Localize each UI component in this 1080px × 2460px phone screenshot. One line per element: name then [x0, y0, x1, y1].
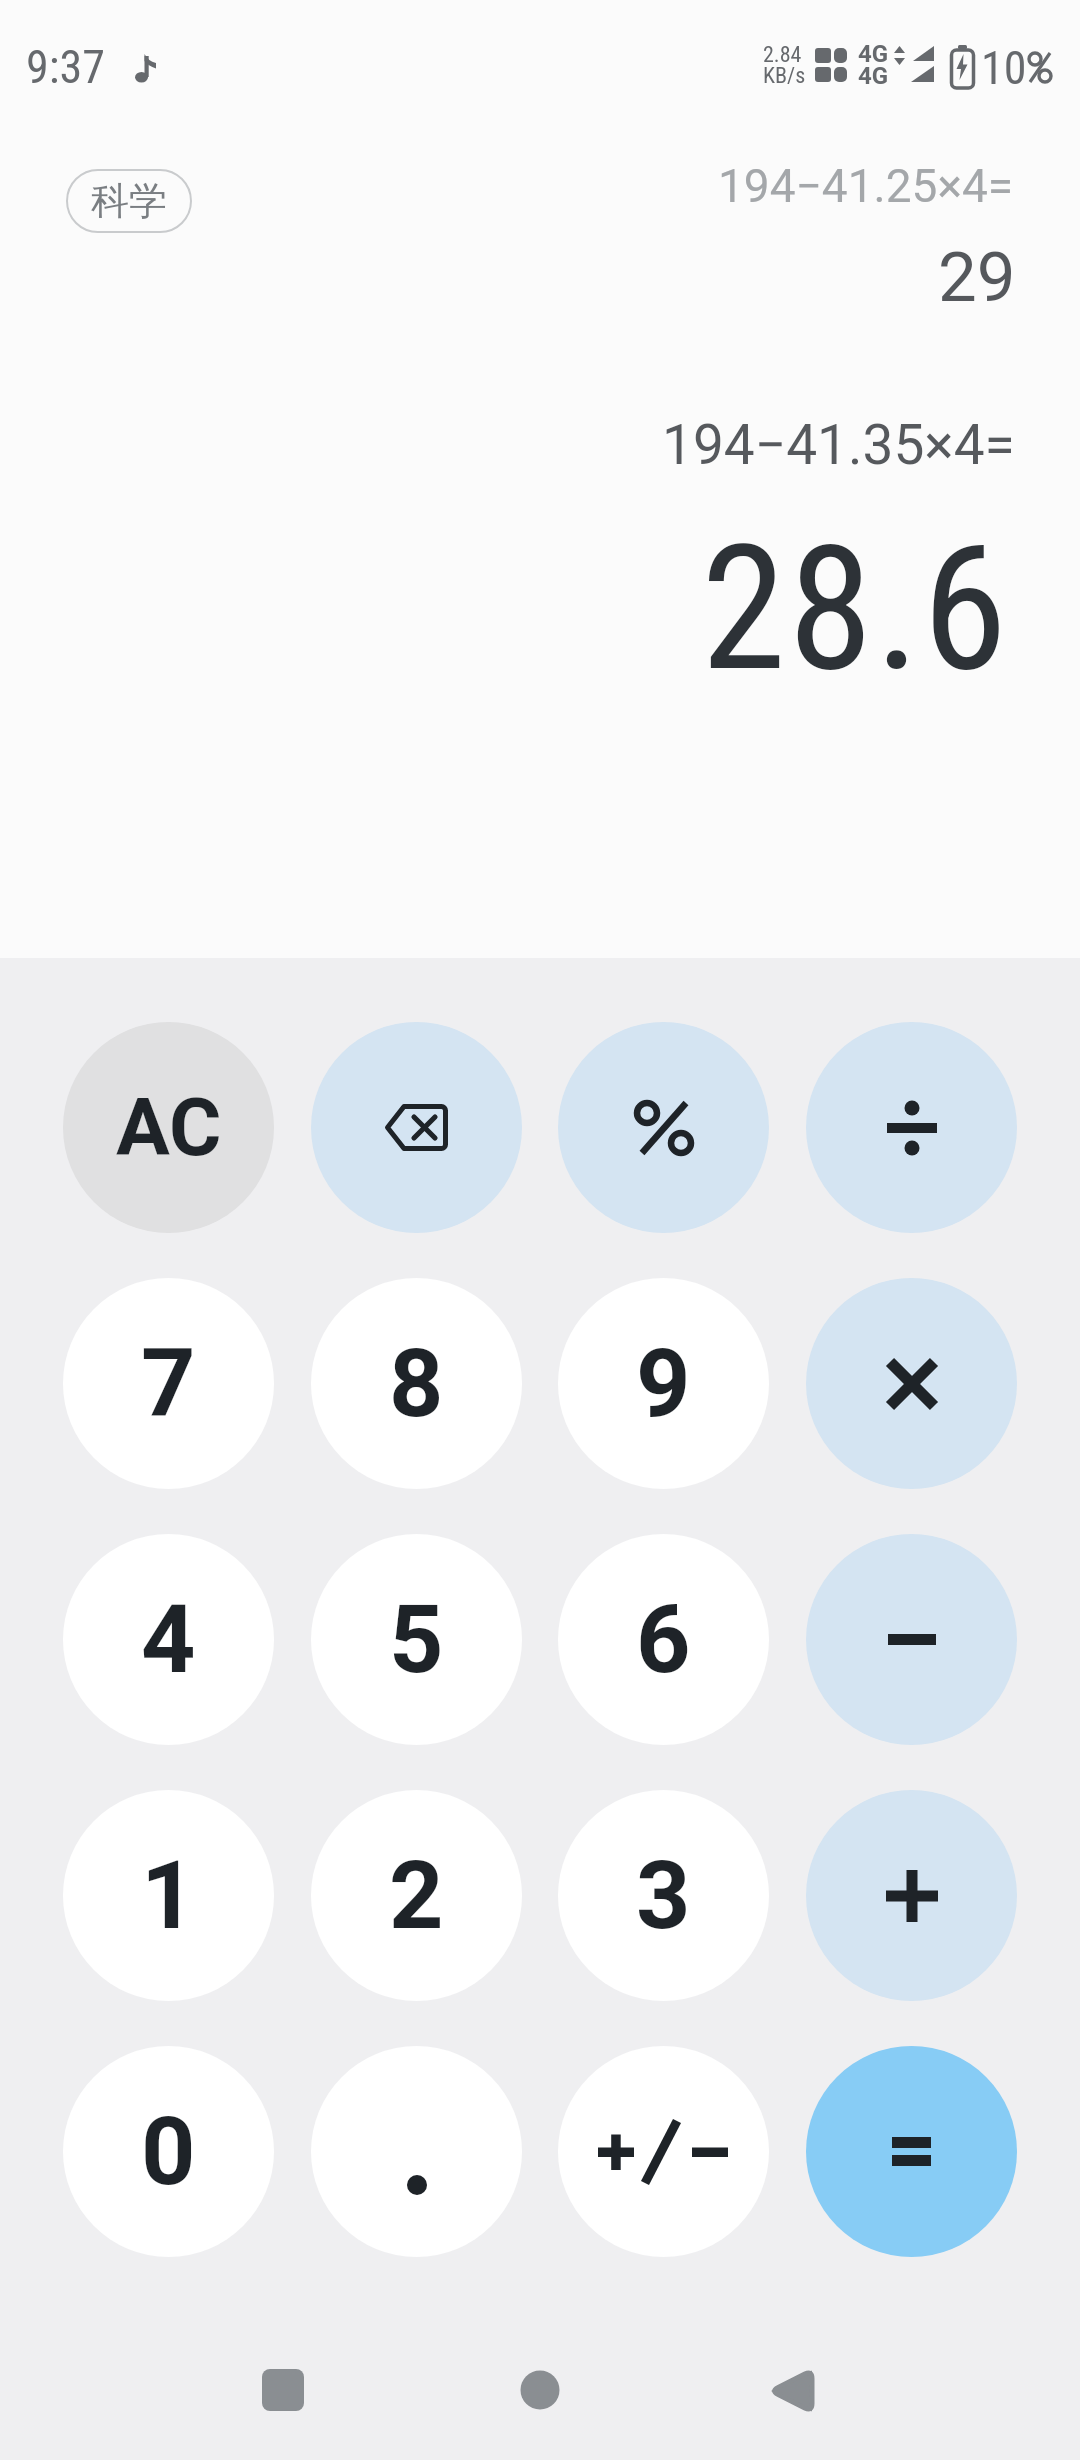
staticText: 4G — [858, 40, 889, 68]
staticText: 6 — [636, 1584, 691, 1695]
staticText: 29 — [938, 237, 1016, 318]
button[interactable] — [311, 2046, 522, 2257]
button[interactable] — [245, 2350, 325, 2430]
button[interactable]: 科学 — [66, 169, 192, 233]
staticText: 194−41.25×4= — [718, 159, 1014, 213]
button[interactable] — [806, 1534, 1017, 1745]
staticText: 1 — [141, 1840, 196, 1951]
staticText: 2 — [389, 1840, 444, 1951]
button[interactable]: 2 — [311, 1790, 522, 2001]
staticText: 科学 — [91, 177, 167, 225]
button[interactable] — [500, 2350, 580, 2430]
button[interactable] — [558, 2046, 769, 2257]
staticText: 8 — [389, 1328, 444, 1439]
button[interactable] — [806, 1278, 1017, 1489]
staticText: 194−41.35×4= — [662, 413, 1015, 477]
staticText: AC — [116, 1081, 222, 1175]
button[interactable] — [311, 1022, 522, 1233]
staticText: 7 — [141, 1328, 196, 1439]
staticText: 5 — [389, 1584, 444, 1695]
button[interactable]: 5 — [311, 1534, 522, 1745]
staticText: 3 — [636, 1840, 691, 1951]
button[interactable] — [806, 1790, 1017, 2001]
staticText: 4G — [858, 62, 889, 90]
button[interactable] — [750, 2350, 830, 2430]
button[interactable]: 9 — [558, 1278, 769, 1489]
staticText: 2.84 — [763, 42, 802, 68]
button[interactable]: 4 — [63, 1534, 274, 1745]
staticText: 9 — [636, 1328, 691, 1439]
button[interactable] — [806, 2046, 1017, 2257]
button[interactable]: 7 — [63, 1278, 274, 1489]
button[interactable]: 6 — [558, 1534, 769, 1745]
button[interactable]: 8 — [311, 1278, 522, 1489]
staticText: 4 — [141, 1584, 196, 1695]
button[interactable]: 0 — [63, 2046, 274, 2257]
button[interactable]: 3 — [558, 1790, 769, 2001]
button[interactable] — [558, 1022, 769, 1233]
staticText: 0 — [141, 2096, 196, 2207]
staticText: 10 — [981, 41, 1027, 95]
staticText: 9:37 — [26, 40, 105, 94]
staticText: KB/s — [763, 63, 806, 89]
button[interactable]: 1 — [63, 1790, 274, 2001]
button[interactable] — [806, 1022, 1017, 1233]
button[interactable]: AC — [63, 1022, 274, 1233]
staticText: 28.6 — [701, 508, 1010, 710]
